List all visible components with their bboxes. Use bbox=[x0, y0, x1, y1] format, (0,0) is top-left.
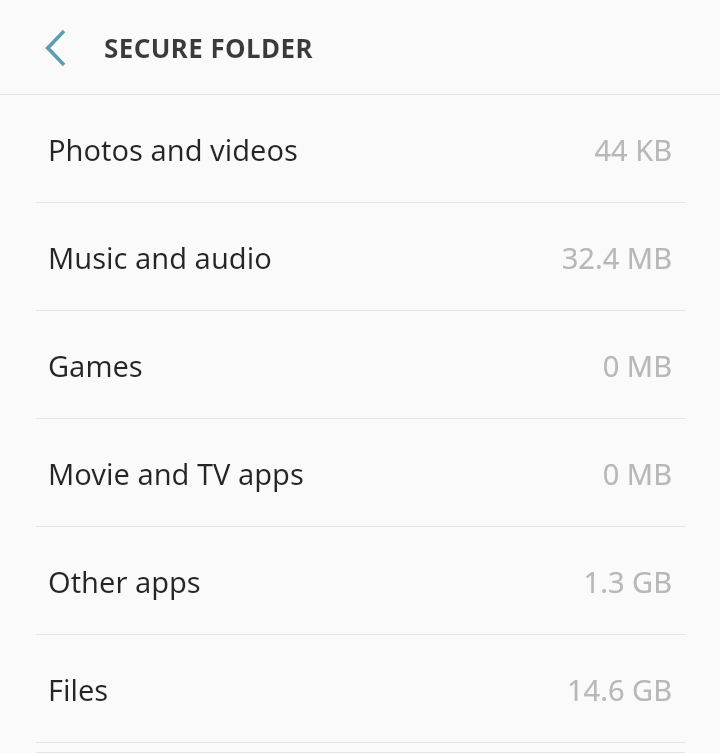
staticText: Movie and TV apps bbox=[48, 454, 602, 493]
staticText: Photos and videos bbox=[48, 130, 594, 169]
staticText: Music and audio bbox=[48, 238, 561, 277]
button[interactable]: Photos and videos bbox=[0, 95, 720, 203]
staticText: 14.6 GB bbox=[566, 670, 672, 709]
staticText: 0 MB bbox=[602, 454, 672, 493]
button[interactable]: Back bbox=[22, 14, 90, 82]
staticText: SECURE FOLDER bbox=[104, 30, 313, 65]
staticText: 0 MB bbox=[602, 346, 672, 385]
staticText: 44 KB bbox=[594, 130, 672, 169]
staticText: 32.4 MB bbox=[561, 238, 672, 277]
staticText: Other apps bbox=[48, 562, 583, 601]
staticText: Games bbox=[48, 346, 602, 385]
staticText: 1.3 GB bbox=[583, 562, 672, 601]
staticText: Files bbox=[48, 670, 566, 709]
button[interactable]: Movie and TV apps bbox=[0, 419, 720, 527]
button[interactable]: Documents bbox=[0, 743, 720, 753]
staticText: Documents bbox=[48, 743, 578, 753]
button[interactable]: Files bbox=[0, 635, 720, 743]
button[interactable]: Games bbox=[0, 311, 720, 419]
button[interactable]: Other apps bbox=[0, 527, 720, 635]
button[interactable]: Music and audio bbox=[0, 203, 720, 311]
staticText: 2.1 MB bbox=[578, 743, 672, 753]
